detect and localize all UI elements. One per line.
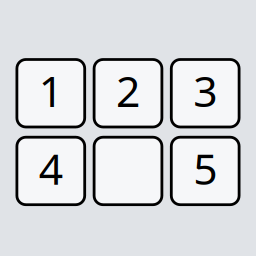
button[interactable]: 2 (94, 59, 162, 127)
staticText: 4 (39, 140, 63, 196)
staticText: 2 (116, 62, 140, 119)
button[interactable]: 5 (171, 137, 239, 205)
button[interactable]: 1 (17, 59, 85, 127)
staticText: 3 (193, 62, 217, 119)
button[interactable]: 4 (17, 137, 85, 205)
staticText: 5 (193, 140, 217, 196)
staticText: 1 (39, 62, 63, 119)
button[interactable]: Blank key (94, 137, 162, 205)
button[interactable]: 3 (171, 59, 239, 127)
